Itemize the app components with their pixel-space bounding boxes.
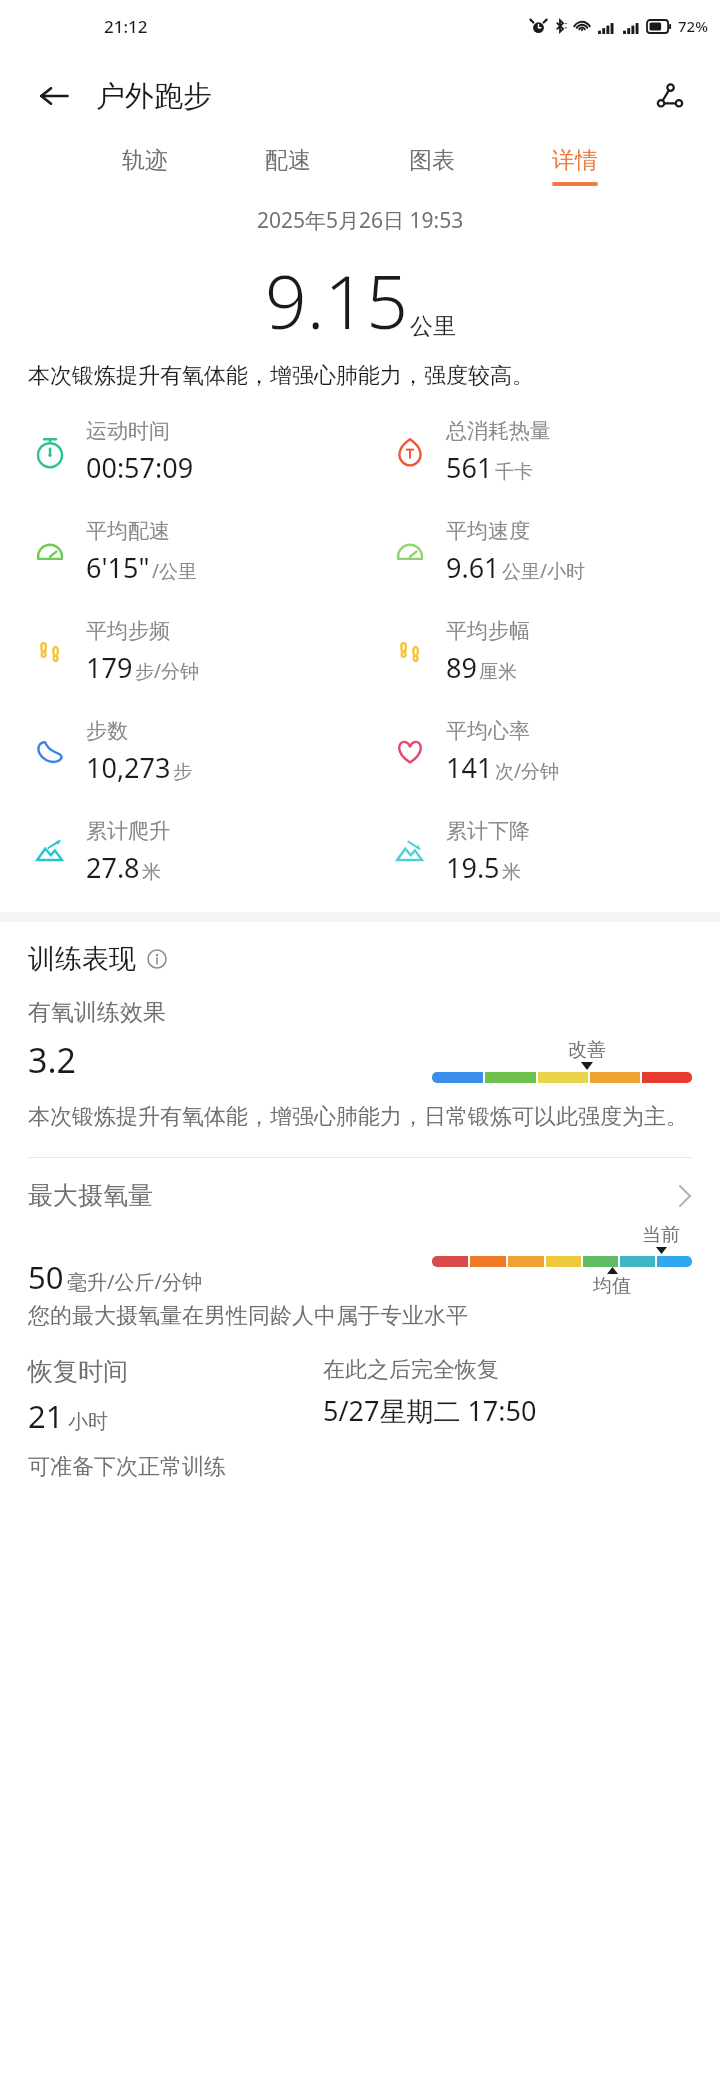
- staticText: 次/分钟: [495, 758, 560, 784]
- button[interactable]: 平均心率: [360, 702, 720, 802]
- staticText: 小时: [68, 1409, 108, 1434]
- staticText: 本次锻炼提升有氧体能，增强心肺能力，强度较高。: [28, 362, 692, 390]
- button[interactable]: Back: [30, 72, 78, 120]
- button[interactable]: 运动时间: [0, 402, 360, 502]
- staticText: 平均心率: [446, 718, 530, 744]
- staticText: 21: [28, 1395, 64, 1437]
- staticText: 00:57:09: [86, 449, 194, 486]
- staticText: 详情: [552, 146, 598, 175]
- staticText: 3.2: [28, 1037, 77, 1083]
- staticText: 米: [502, 860, 521, 884]
- staticText: 轨迹: [122, 146, 168, 175]
- staticText: 本次锻炼提升有氧体能，增强心肺能力，日常锻炼可以此强度为主。: [28, 1103, 688, 1131]
- button[interactable]: 平均配速: [0, 502, 360, 602]
- button[interactable]: 轨迹: [118, 140, 172, 192]
- staticText: 训练表现: [28, 942, 136, 976]
- staticText: 毫升/公斤/分钟: [67, 1268, 202, 1295]
- button[interactable]: 总消耗热量: [360, 402, 720, 502]
- staticText: 运动时间: [86, 418, 170, 444]
- staticText: 5/27星期二 17:50: [323, 1392, 537, 1429]
- staticText: 均值: [593, 1274, 631, 1298]
- staticText: 步/分钟: [135, 658, 200, 684]
- staticText: 户外跑步: [96, 78, 212, 115]
- staticText: 89: [446, 649, 477, 686]
- staticText: 平均速度: [446, 518, 530, 544]
- staticText: 可准备下次正常训练: [28, 1453, 226, 1481]
- staticText: 9.61: [446, 549, 500, 586]
- button[interactable]: 最大摄氧量: [28, 1180, 692, 1211]
- staticText: /公里: [152, 558, 198, 584]
- button[interactable]: 平均步幅: [360, 602, 720, 702]
- staticText: 2025年5月26日 19:53: [257, 206, 464, 235]
- button[interactable]: 图表: [405, 140, 459, 192]
- staticText: 平均配速: [86, 518, 170, 544]
- staticText: 在此之后完全恢复: [323, 1356, 499, 1384]
- staticText: 米: [142, 860, 161, 884]
- staticText: 19.5: [446, 849, 500, 886]
- button[interactable]: 累计爬升: [0, 802, 360, 902]
- staticText: 步数: [86, 718, 128, 744]
- staticText: 累计爬升: [86, 818, 170, 844]
- button[interactable]: 详情: [548, 140, 602, 192]
- staticText: 9.15: [265, 251, 408, 350]
- button[interactable]: 配速: [261, 140, 315, 192]
- staticText: 千卡: [495, 460, 533, 484]
- staticText: 平均步频: [86, 618, 170, 644]
- button[interactable]: 累计下降: [360, 802, 720, 902]
- staticText: 平均步幅: [446, 618, 530, 644]
- staticText: 恢复时间: [28, 1356, 128, 1387]
- staticText: 72%: [678, 16, 708, 36]
- button[interactable]: 步数: [0, 702, 360, 802]
- staticText: 179: [86, 649, 133, 686]
- staticText: 公里/小时: [502, 558, 586, 584]
- staticText: 21:12: [104, 15, 148, 38]
- staticText: 图表: [409, 146, 455, 175]
- staticText: 改善: [568, 1038, 606, 1062]
- staticText: 公里: [410, 312, 456, 341]
- staticText: 当前: [642, 1223, 680, 1247]
- staticText: 6'15": [86, 549, 150, 586]
- staticText: 最大摄氧量: [28, 1180, 153, 1211]
- button[interactable]: 平均速度: [360, 502, 720, 602]
- staticText: 27.8: [86, 849, 140, 886]
- staticText: 厘米: [479, 660, 517, 684]
- staticText: 总消耗热量: [446, 418, 551, 444]
- staticText: 有氧训练效果: [28, 998, 166, 1027]
- staticText: 141: [446, 749, 493, 786]
- staticText: 50: [28, 1256, 64, 1298]
- staticText: 您的最大摄氧量在男性同龄人中属于专业水平: [28, 1302, 468, 1330]
- staticText: 配速: [265, 146, 311, 175]
- staticText: 10,273: [86, 749, 171, 786]
- button[interactable]: Info: [144, 946, 170, 972]
- staticText: 步: [173, 760, 192, 784]
- staticText: 累计下降: [446, 818, 530, 844]
- button[interactable]: 平均步频: [0, 602, 360, 702]
- staticText: 561: [446, 449, 493, 486]
- button[interactable]: Share: [646, 72, 694, 120]
